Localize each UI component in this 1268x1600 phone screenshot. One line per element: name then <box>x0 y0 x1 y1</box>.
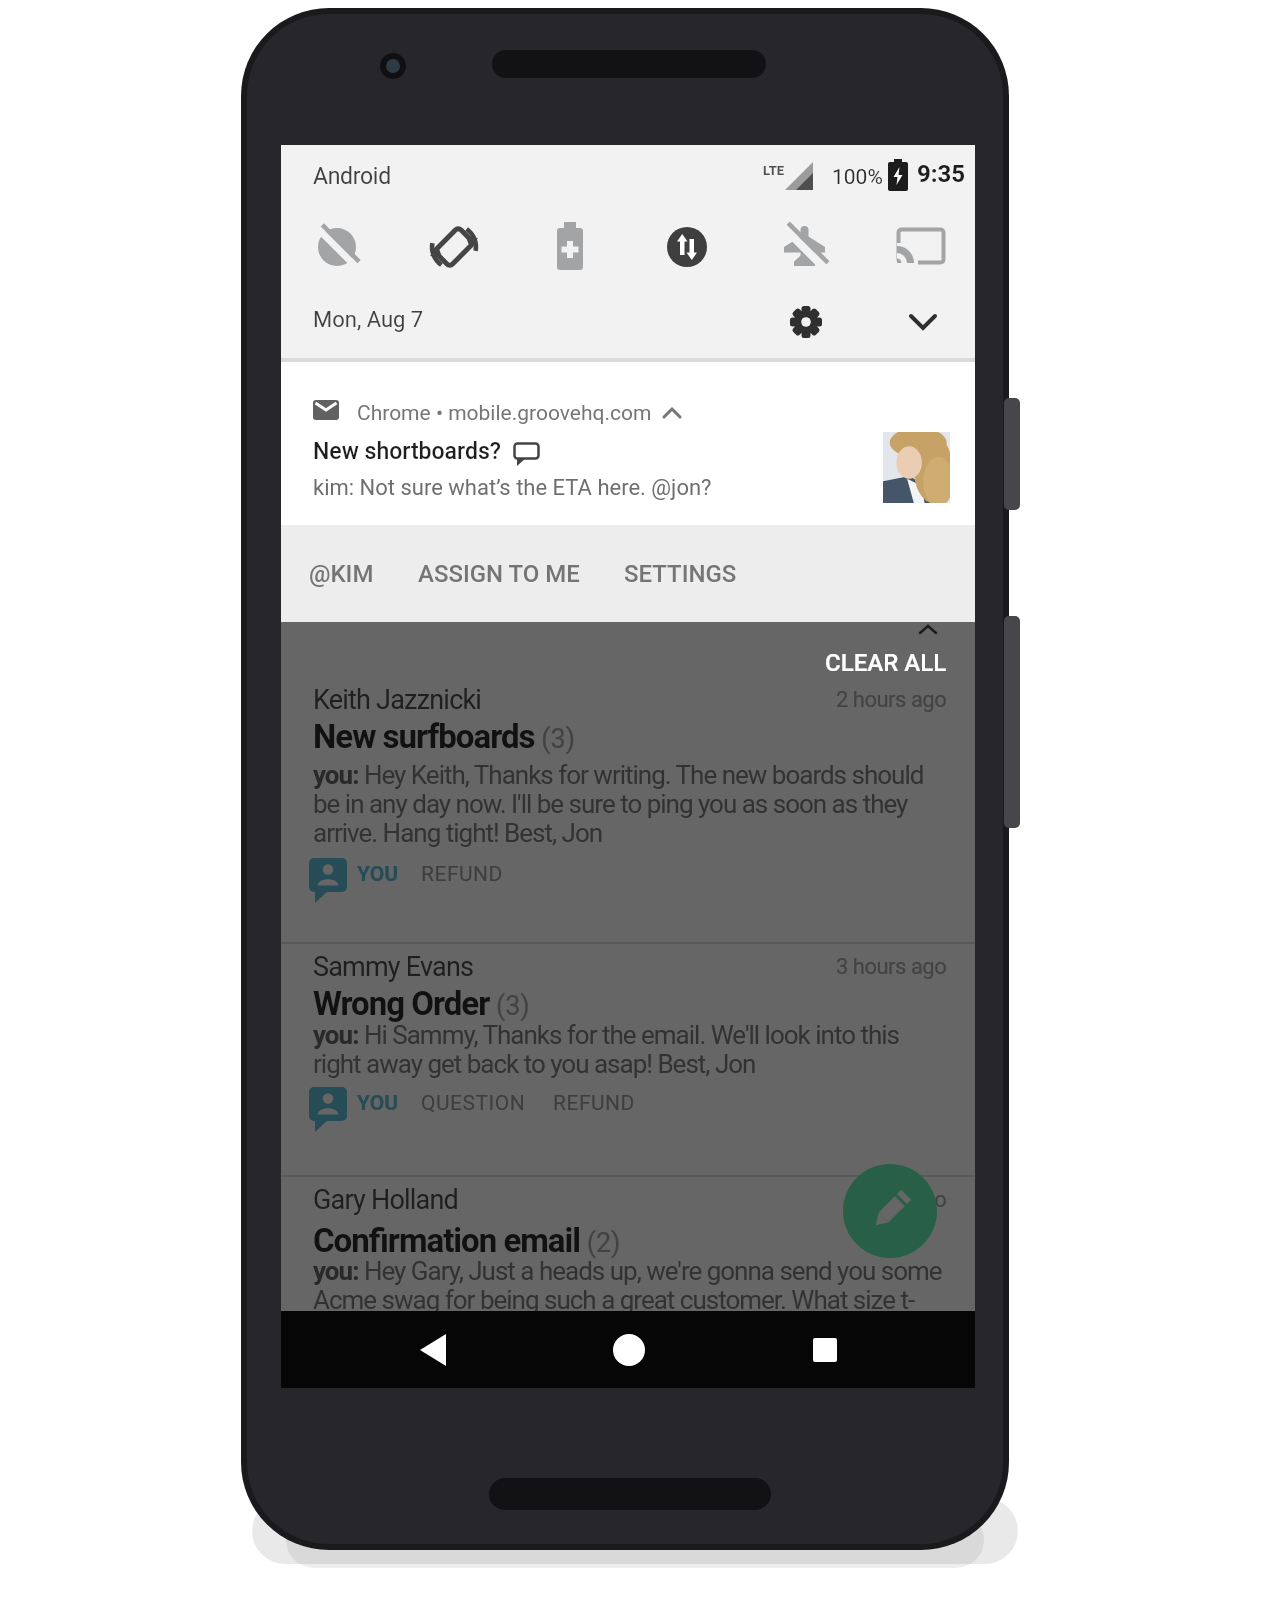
staticText: SETTINGS <box>624 560 737 588</box>
button[interactable] <box>843 1164 937 1258</box>
staticText: be in any day now. I'll be sure to ping … <box>313 789 908 819</box>
button[interactable] <box>397 1325 467 1375</box>
staticText: YOU <box>357 1091 399 1116</box>
button[interactable]: CLEAR ALL <box>747 648 947 678</box>
staticText: Sammy Evans <box>313 951 474 983</box>
staticText: New shortboards? <box>313 438 501 465</box>
staticText: ASSIGN TO ME <box>418 560 580 588</box>
staticText: REFUND <box>421 862 503 887</box>
button[interactable] <box>428 221 480 273</box>
staticText: 9:35 <box>917 160 966 188</box>
staticText: Gary Holland <box>313 1184 458 1216</box>
button[interactable] <box>554 222 586 270</box>
button[interactable] <box>313 223 361 271</box>
staticText: QUESTION <box>421 1091 526 1116</box>
staticText: 1 hour ago <box>847 1187 947 1213</box>
staticText: kim: Not sure what’s the ETA here. @jon? <box>313 475 712 501</box>
button[interactable] <box>790 1325 860 1375</box>
button[interactable] <box>594 1325 664 1375</box>
staticText: @KIM <box>309 560 374 588</box>
staticText: Mon, Aug 7 <box>313 307 424 333</box>
staticText: 3 hours ago <box>836 954 947 980</box>
staticText: Android <box>313 163 391 190</box>
staticText: CLEAR ALL <box>825 649 947 677</box>
staticText: Acme swag for being such a great custome… <box>313 1285 915 1311</box>
button[interactable]: @KIM <box>293 551 389 597</box>
button[interactable]: ASSIGN TO ME <box>409 551 589 597</box>
button[interactable]: SETTINGS <box>615 551 745 597</box>
staticText: LTE <box>763 163 785 178</box>
staticText: you: Hey Keith, Thanks for writing. The … <box>313 760 924 790</box>
staticText: REFUND <box>553 1091 635 1116</box>
staticText: 2 hours ago <box>836 687 947 713</box>
staticText: Confirmation email (2) <box>313 1221 621 1260</box>
staticText: you: Hi Sammy, Thanks for the email. We'… <box>313 1020 900 1050</box>
staticText: you: Hey Gary, Just a heads up, we're go… <box>313 1256 942 1286</box>
button[interactable] <box>667 227 707 267</box>
staticText: Keith Jazznicki <box>313 684 482 716</box>
staticText: arrive. Hang tight! Best, Jon <box>313 818 603 848</box>
button[interactable] <box>780 223 828 271</box>
staticText: New surfboards (3) <box>313 717 576 756</box>
staticText: 100% <box>832 165 883 190</box>
button[interactable]: Chrome • mobile.groovehq.com <box>281 362 975 525</box>
staticText: Chrome • mobile.groovehq.com <box>357 401 652 426</box>
button[interactable] <box>897 228 945 266</box>
staticText: right away get back to you asap! Best, J… <box>313 1049 756 1079</box>
staticText: YOU <box>357 862 399 887</box>
staticText: Wrong Order (3) <box>313 984 530 1023</box>
